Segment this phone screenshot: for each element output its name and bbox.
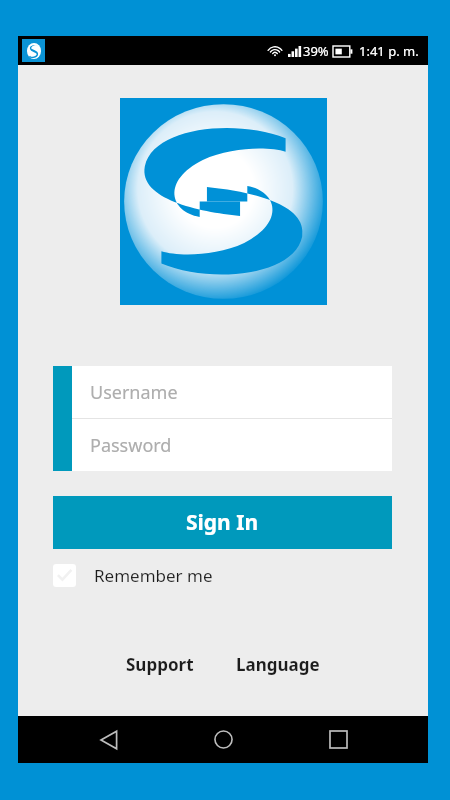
staticText: Support (126, 653, 194, 676)
button[interactable]: Password (72, 419, 392, 471)
staticText: 1:41 p. m. (359, 42, 419, 60)
button[interactable]: Remember me (53, 560, 213, 590)
button[interactable]: Username (72, 366, 392, 418)
button[interactable]: Recents (314, 716, 362, 763)
staticText: Language (236, 653, 320, 676)
staticText: Sign In (186, 508, 259, 537)
button[interactable]: Support (118, 649, 202, 680)
button[interactable]: Home (199, 716, 247, 763)
button[interactable]: Sign In (53, 496, 392, 549)
staticText: Password (90, 433, 172, 458)
staticText: Username (90, 380, 178, 405)
staticText: 39% (303, 42, 329, 60)
staticText: Remember me (94, 564, 213, 587)
button[interactable]: Back (85, 716, 133, 763)
button[interactable]: Language (228, 649, 328, 680)
